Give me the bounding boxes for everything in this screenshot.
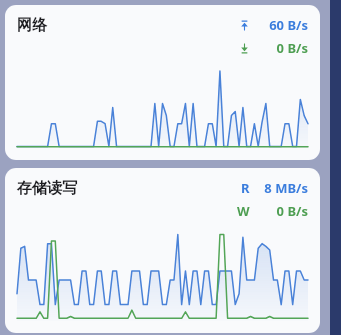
staticText: 0 B/s (256, 39, 308, 57)
staticText: R (241, 179, 250, 197)
staticText: 60 B/s (256, 16, 308, 34)
staticText: 存储读写 (17, 179, 77, 198)
button[interactable]: 网络 (5, 5, 320, 160)
staticText: 网络 (17, 16, 47, 35)
other: Upload (239, 20, 250, 31)
other: Download (239, 43, 250, 54)
staticText: 0 B/s (256, 202, 308, 220)
button[interactable]: 存储读写 (5, 168, 320, 333)
staticText: 8 MB/s (256, 179, 308, 197)
staticText: W (237, 202, 250, 220)
